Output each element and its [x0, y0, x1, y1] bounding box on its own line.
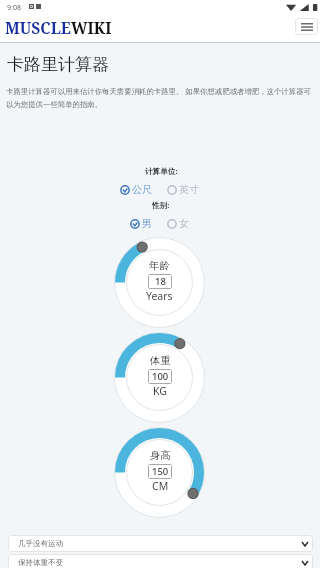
staticText: 身高	[150, 449, 171, 462]
staticText: 18	[155, 275, 166, 288]
button[interactable]: Menu	[295, 18, 318, 35]
staticText: 性别:	[152, 200, 170, 210]
staticText: 年龄	[149, 259, 170, 272]
staticText: 卡路里计算器可以用来估计你每天需要消耗的卡路里。 如果你想减肥或者增肥，这个计算…	[6, 86, 315, 109]
button[interactable]: 女	[167, 217, 189, 230]
staticText: 100	[152, 370, 169, 383]
staticText: 公尺	[132, 183, 152, 196]
staticText: 保持体重不变	[18, 558, 63, 567]
button[interactable]: 英寸	[167, 183, 199, 196]
staticText: 卡路里计算器	[7, 54, 109, 75]
button[interactable]: 保持体重不变	[8, 554, 313, 568]
button[interactable]: 几乎没有运动	[8, 535, 313, 552]
staticText: MUSCLE	[5, 17, 71, 38]
staticText: 计算单位:	[145, 166, 178, 176]
staticText: 9:08	[7, 3, 21, 13]
staticText: 女	[179, 217, 189, 230]
staticText: 英寸	[179, 183, 199, 196]
staticText: 几乎没有运动	[18, 539, 63, 548]
staticText: 150	[152, 465, 169, 478]
staticText: CM	[152, 479, 169, 493]
staticText: KG	[153, 384, 167, 398]
staticText: WIKI	[71, 17, 112, 38]
button[interactable]: 男	[130, 217, 152, 230]
staticText: 体重	[150, 354, 171, 367]
button[interactable]: 公尺	[120, 183, 152, 196]
staticText: Years	[146, 289, 173, 303]
staticText: 男	[142, 217, 152, 230]
